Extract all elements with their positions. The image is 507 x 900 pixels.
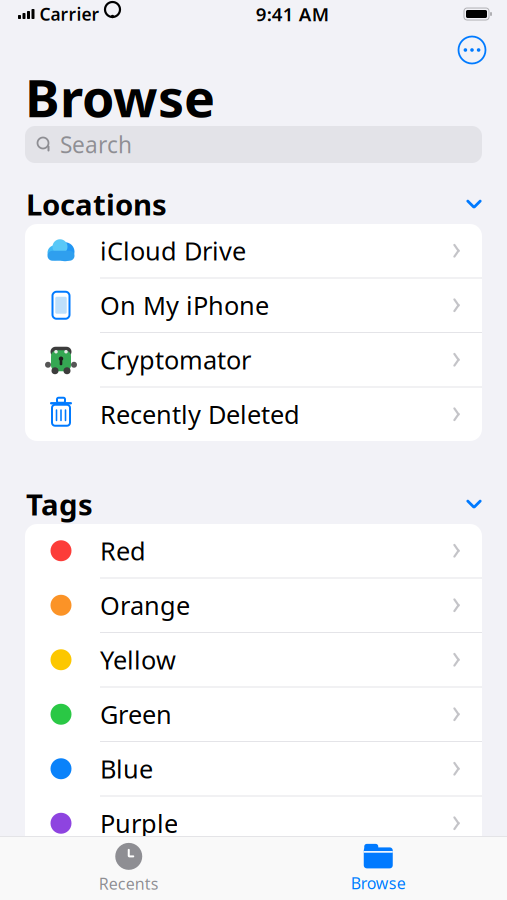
- staticText: Cryptomator: [100, 343, 251, 376]
- staticText: Recents: [99, 873, 159, 894]
- button[interactable]: Cryptomator: [25, 333, 482, 387]
- staticText: Search: [60, 129, 132, 159]
- button[interactable]: Red: [25, 524, 482, 578]
- staticText: Browse: [25, 62, 215, 132]
- staticText: Recently Deleted: [100, 397, 300, 431]
- staticText: Blue: [100, 752, 153, 785]
- staticText: Orange: [100, 588, 190, 622]
- button[interactable]: Recently Deleted: [25, 387, 482, 441]
- button[interactable]: More options: [452, 30, 492, 70]
- button[interactable]: Blue: [25, 742, 482, 796]
- staticText: Red: [100, 534, 146, 567]
- button[interactable]: On My iPhone: [25, 278, 482, 333]
- button[interactable]: Recents: [4, 837, 253, 899]
- staticText: Carrier: [39, 2, 99, 25]
- button[interactable]: Collapse Locations: [457, 187, 491, 221]
- button[interactable]: Purple: [25, 796, 482, 850]
- staticText: On My iPhone: [100, 288, 269, 322]
- button[interactable]: Yellow: [25, 633, 482, 687]
- staticText: Yellow: [100, 643, 176, 676]
- button[interactable]: Search: [25, 126, 482, 163]
- button[interactable]: Orange: [25, 578, 482, 633]
- staticText: iCloud Drive: [100, 234, 246, 267]
- staticText: Browse: [351, 872, 406, 894]
- button[interactable]: iCloud Drive: [25, 224, 482, 278]
- button[interactable]: Collapse Tags: [457, 487, 491, 521]
- staticText: Tags: [26, 484, 93, 523]
- button[interactable]: Browse: [253, 837, 503, 899]
- staticText: Purple: [100, 806, 178, 840]
- staticText: Green: [100, 697, 172, 731]
- staticText: 9:41 AM: [256, 2, 329, 26]
- staticText: Locations: [26, 184, 167, 223]
- button[interactable]: Green: [25, 687, 482, 742]
